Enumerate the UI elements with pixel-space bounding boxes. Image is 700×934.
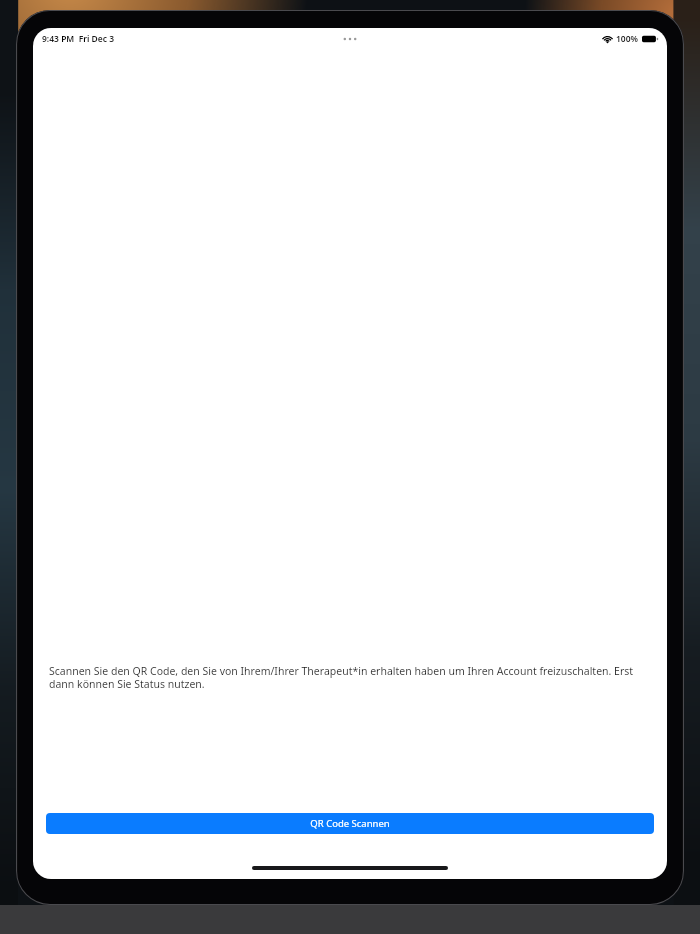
other: Multitasking controls xyxy=(339,34,361,44)
button[interactable]: QR Code Scannen xyxy=(46,813,654,834)
staticText: QR Code Scannen xyxy=(310,817,390,830)
staticText: 9:43 PM Fri Dec 3 xyxy=(42,33,115,45)
staticText: 100% xyxy=(616,33,639,45)
staticText: Scannen Sie den QR Code, den Sie von Ihr… xyxy=(49,664,653,691)
